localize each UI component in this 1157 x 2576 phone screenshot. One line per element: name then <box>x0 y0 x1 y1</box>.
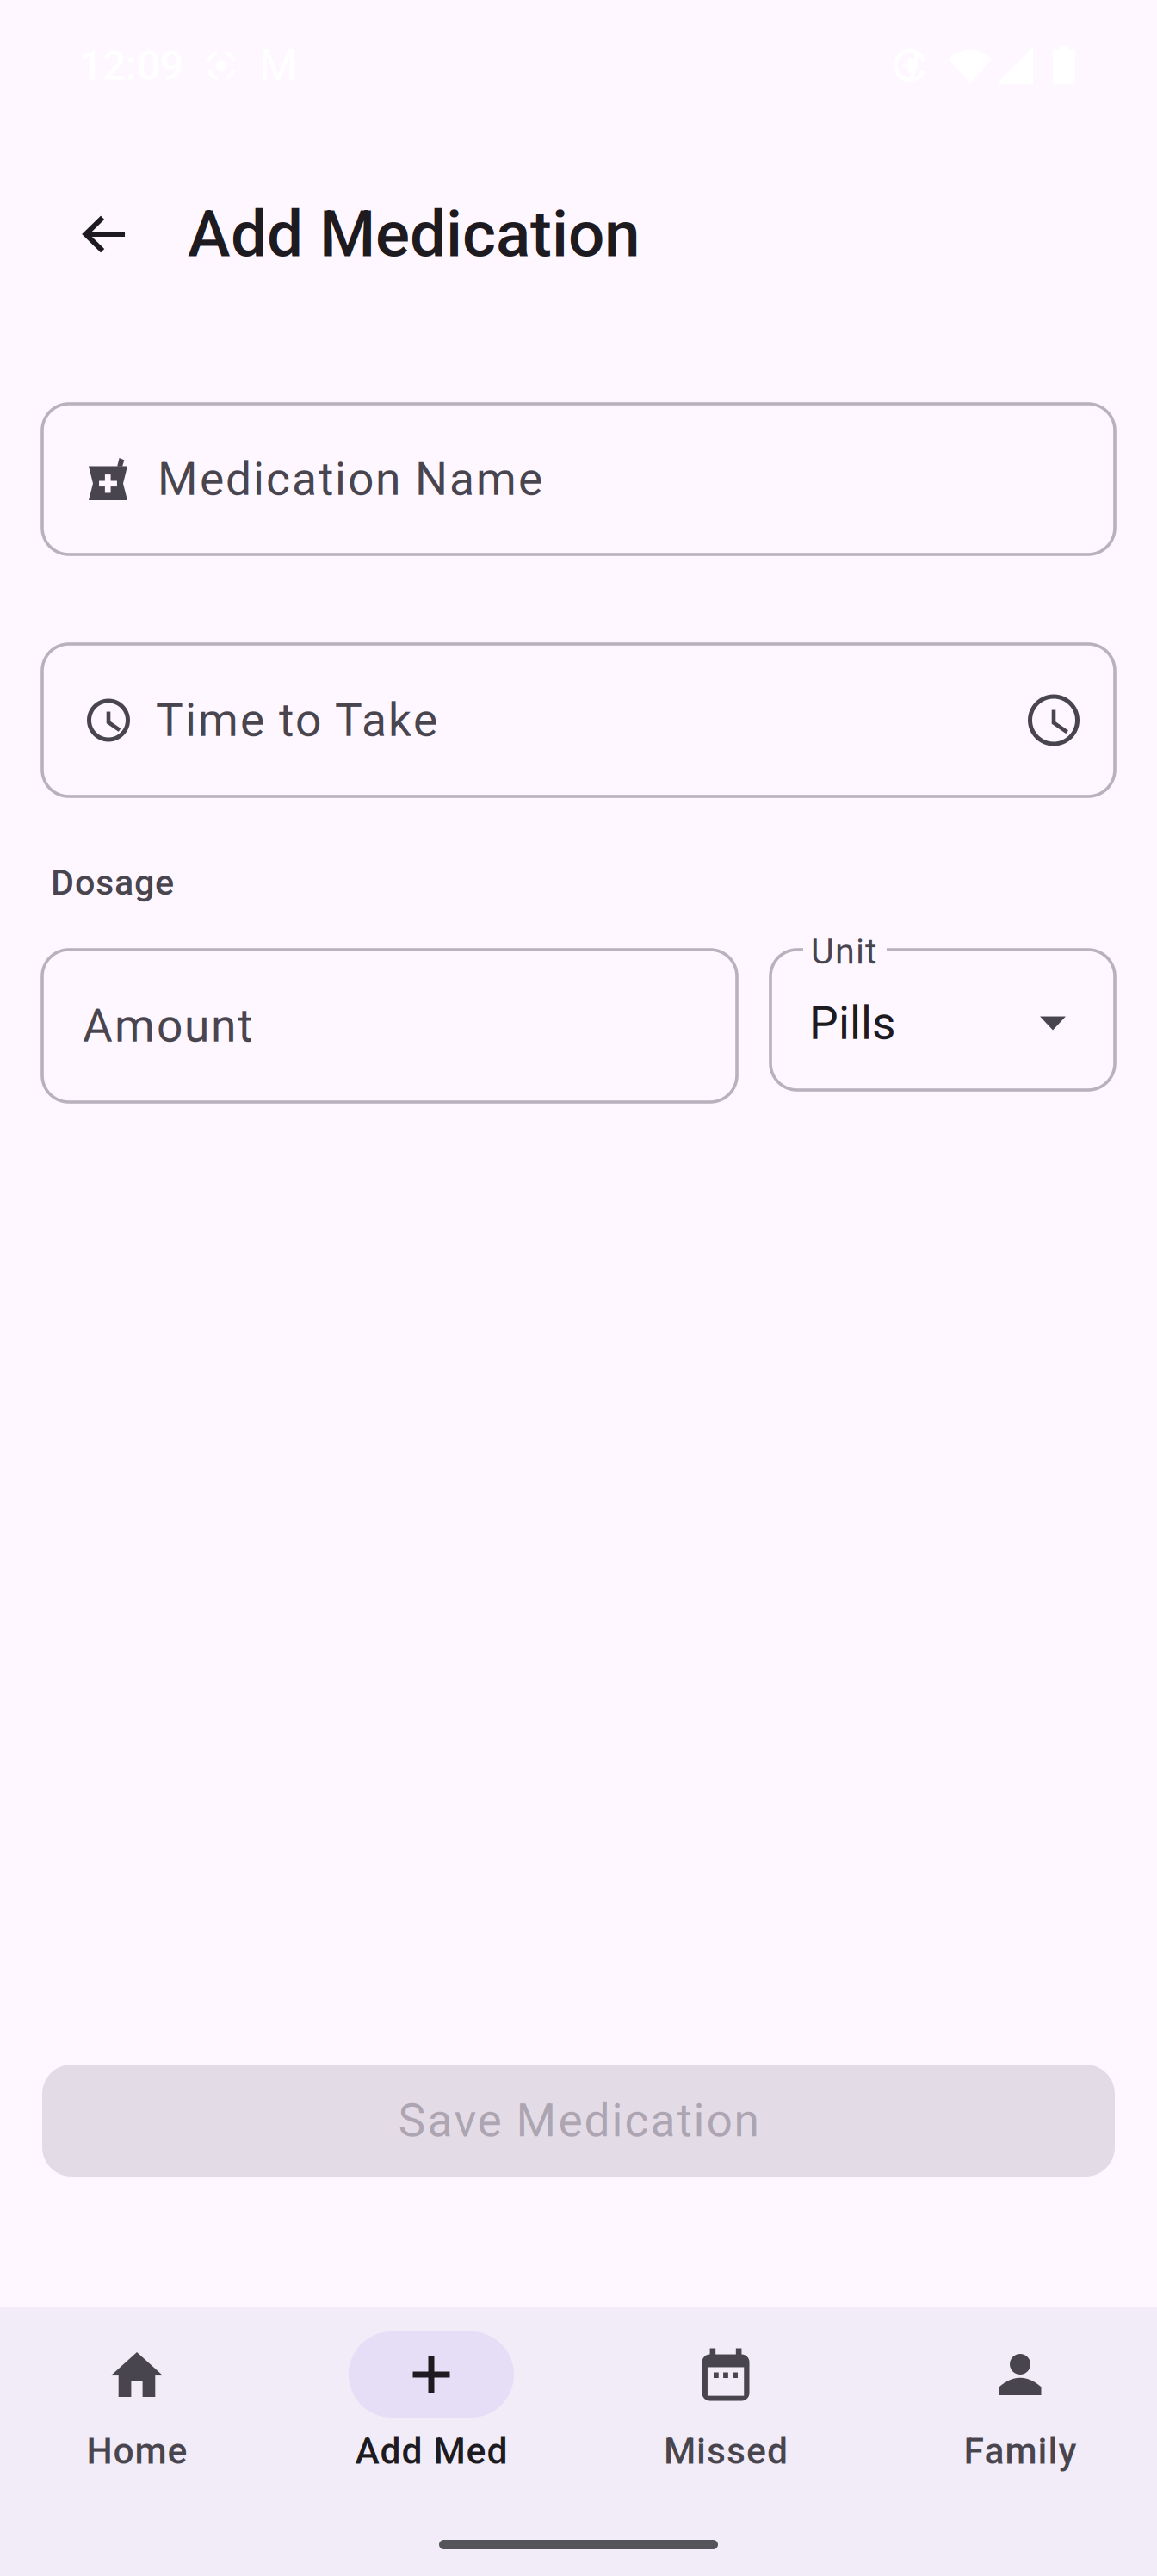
staticText: Missed <box>664 2430 788 2473</box>
staticText: Pills <box>809 996 896 1050</box>
button[interactable]: Pills <box>770 950 1115 1102</box>
staticText: Add Med <box>355 2430 507 2473</box>
button[interactable]: Medication Name <box>42 404 1115 554</box>
button[interactable]: Home <box>16 2331 257 2473</box>
staticText: 12:09 <box>79 41 183 90</box>
staticText: Unit <box>811 931 877 972</box>
staticText: Add Medication <box>188 196 640 272</box>
staticText: Dosage <box>51 862 174 903</box>
button[interactable]: Family <box>900 2331 1141 2473</box>
staticText: Home <box>87 2430 187 2473</box>
button[interactable]: Back <box>60 189 150 279</box>
button[interactable]: Save Medication <box>42 2065 1115 2177</box>
staticText: Family <box>964 2430 1077 2473</box>
staticText: M <box>259 40 297 91</box>
staticText: Time to Take <box>156 693 437 747</box>
button[interactable]: Amount <box>42 950 737 1102</box>
button[interactable]: Time to Take <box>42 644 1115 796</box>
staticText: Medication Name <box>158 452 542 506</box>
staticText: Save Medication <box>398 2094 759 2147</box>
staticText: Amount <box>83 999 252 1053</box>
button[interactable]: Missed <box>605 2331 846 2473</box>
button[interactable]: Add Med <box>311 2331 552 2473</box>
